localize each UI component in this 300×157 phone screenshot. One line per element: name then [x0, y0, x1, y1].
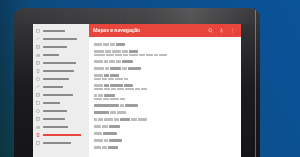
button[interactable]: Voice search	[217, 26, 226, 35]
other: Voice search	[219, 28, 224, 33]
button[interactable]	[94, 65, 235, 72]
button[interactable]	[94, 41, 235, 48]
button[interactable]	[33, 131, 89, 139]
button[interactable]	[94, 58, 235, 65]
button[interactable]	[94, 72, 235, 82]
button[interactable]	[94, 123, 235, 130]
button[interactable]	[33, 91, 89, 99]
button[interactable]: More options	[228, 26, 237, 35]
other: Search	[208, 28, 213, 33]
button[interactable]	[94, 109, 235, 116]
button[interactable]	[94, 102, 235, 109]
button[interactable]: Mapas e navegação	[93, 25, 141, 36]
staticText: Mapas e navegação	[93, 27, 141, 34]
button[interactable]	[33, 123, 89, 131]
button[interactable]	[33, 139, 89, 147]
other: More options	[230, 28, 235, 33]
button[interactable]: Search	[206, 26, 215, 35]
button[interactable]	[94, 144, 235, 151]
button[interactable]	[33, 27, 89, 35]
button[interactable]	[33, 83, 89, 91]
button[interactable]	[94, 137, 235, 144]
button[interactable]	[94, 92, 235, 102]
button[interactable]	[94, 82, 235, 92]
button[interactable]	[33, 35, 89, 43]
button[interactable]	[33, 107, 89, 115]
button[interactable]	[33, 99, 89, 107]
button[interactable]	[33, 67, 89, 75]
button[interactable]	[94, 130, 235, 137]
button[interactable]	[33, 115, 89, 123]
button[interactable]	[33, 43, 89, 51]
button[interactable]	[33, 75, 89, 83]
button[interactable]	[94, 116, 235, 123]
button[interactable]	[33, 59, 89, 67]
button[interactable]	[33, 51, 89, 59]
button[interactable]	[94, 48, 235, 58]
